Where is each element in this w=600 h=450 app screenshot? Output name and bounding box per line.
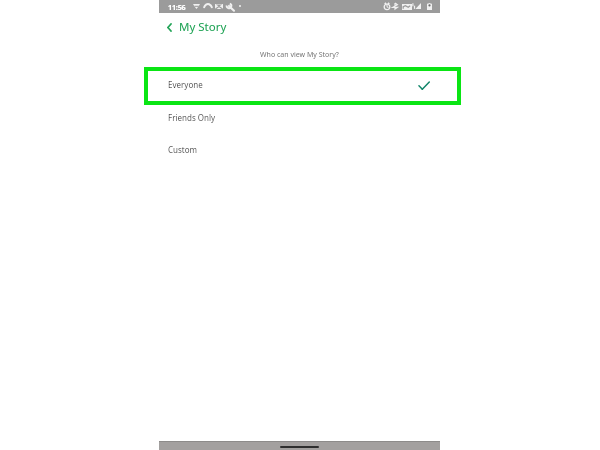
staticText: Who can view My Story? [260, 50, 339, 60]
staticText: Custom [168, 144, 198, 155]
staticText: 11:56 [168, 2, 186, 12]
staticText: Everyone [168, 79, 203, 90]
button[interactable]: Friends Only [159, 101, 440, 133]
staticText: Friends Only [168, 112, 216, 123]
staticText: My Story [179, 19, 227, 35]
button[interactable]: Everyone [159, 68, 440, 100]
button[interactable]: Back [158, 16, 180, 38]
button[interactable]: Custom [159, 133, 440, 165]
